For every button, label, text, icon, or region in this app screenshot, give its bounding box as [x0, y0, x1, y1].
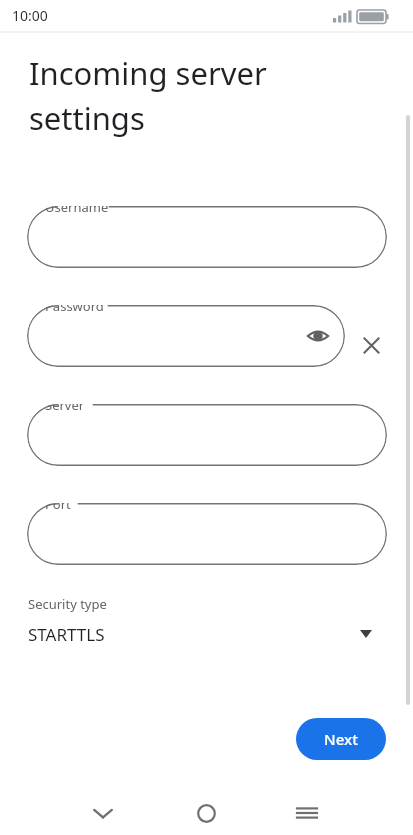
button[interactable]: Home — [182, 789, 230, 835]
button[interactable]: Security type — [20, 588, 393, 656]
staticText: Server — [45, 404, 85, 414]
staticText: Security type — [28, 595, 107, 613]
staticText: STARTTLS — [28, 623, 105, 646]
button[interactable]: Recent apps — [283, 789, 331, 835]
button[interactable]: Clear — [354, 328, 388, 362]
staticText: Incoming server settings — [29, 52, 369, 139]
staticText: 10:00 — [12, 6, 48, 25]
staticText: Username — [45, 206, 109, 216]
staticText: Password — [45, 305, 104, 315]
button[interactable]: Server — [27, 404, 387, 466]
button[interactable]: Password — [27, 305, 345, 367]
button[interactable]: Next — [296, 718, 386, 760]
button[interactable]: Show password — [301, 319, 335, 353]
button[interactable]: Back — [79, 789, 127, 835]
staticText: Next — [324, 729, 358, 749]
staticText: Port — [45, 503, 71, 513]
button[interactable]: Port — [27, 503, 387, 565]
button[interactable]: Username — [27, 206, 387, 268]
